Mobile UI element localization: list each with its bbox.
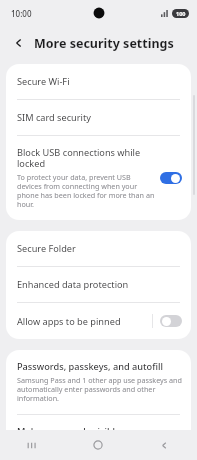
staticText: 100 bbox=[176, 10, 186, 17]
button[interactable]: Allow apps to be pinned bbox=[6, 303, 191, 339]
button[interactable]: Make passwords visible bbox=[6, 415, 191, 460]
button[interactable]: Secure Wi-Fi bbox=[6, 64, 191, 99]
button[interactable]: Home bbox=[65, 430, 131, 460]
button[interactable]: Secure Folder bbox=[6, 231, 191, 266]
staticText: Passwords, passkeys, and autofill bbox=[17, 360, 163, 373]
button[interactable]: SIM card security bbox=[6, 100, 191, 135]
button[interactable]: Toggle off bbox=[160, 432, 182, 444]
staticText: Samsung Pass and 1 other app use passkey… bbox=[17, 375, 182, 404]
button[interactable]: Enhanced data protection bbox=[6, 267, 191, 302]
staticText: Enhanced data protection bbox=[17, 278, 129, 291]
staticText: Make passwords visible bbox=[17, 425, 121, 438]
staticText: Show password characters briefly as you … bbox=[17, 440, 155, 450]
staticText: Secure Folder bbox=[17, 242, 76, 255]
button[interactable]: Back bbox=[131, 430, 197, 460]
button[interactable]: Toggle off bbox=[160, 315, 182, 327]
staticText: SIM card security bbox=[17, 111, 91, 124]
button[interactable]: Back bbox=[9, 33, 29, 53]
button[interactable]: Toggle on bbox=[160, 172, 182, 184]
staticText: To protect your data, prevent USB device… bbox=[17, 172, 155, 210]
staticText: Block USB connections while locked bbox=[17, 146, 155, 170]
button[interactable]: Passwords, passkeys, and autofill bbox=[6, 350, 191, 414]
button[interactable]: Block USB connections while locked bbox=[6, 136, 191, 220]
staticText: More security settings bbox=[34, 35, 174, 52]
staticText: Secure Wi-Fi bbox=[17, 75, 70, 88]
staticText: 10:00 bbox=[11, 8, 32, 19]
button[interactable]: Recents bbox=[0, 430, 65, 460]
staticText: Allow apps to be pinned bbox=[17, 315, 121, 328]
